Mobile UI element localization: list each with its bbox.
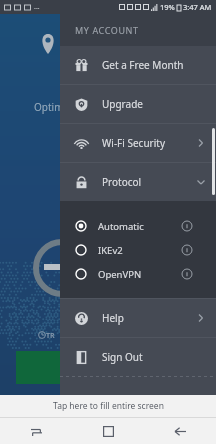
button[interactable]: Back [144, 418, 216, 444]
staticText: TR [46, 331, 55, 341]
staticText: ... [34, 2, 40, 12]
staticText: MY ACCOUNT [75, 24, 139, 36]
staticText: Protocol [102, 175, 196, 189]
staticText: 3:47 AM [183, 2, 212, 12]
staticText: Tap here to fill entire screen [53, 400, 164, 412]
button[interactable]: Protocol [60, 163, 216, 201]
button[interactable]: OpenVPN [60, 262, 216, 286]
staticText: IKEv2 [98, 244, 180, 257]
staticText: Help [102, 311, 196, 325]
button[interactable]: Upgrade [60, 85, 216, 123]
staticText: Get a Free Month [102, 58, 206, 72]
button[interactable]: Home [72, 418, 144, 444]
staticText: Upgrade [102, 97, 206, 111]
staticText: 19% [160, 2, 175, 12]
staticText: Wi-Fi Security [102, 136, 196, 150]
button[interactable]: Get a Free Month [60, 46, 216, 84]
button[interactable]: Info about OpenVPN [180, 267, 194, 281]
button[interactable]: Recents [0, 418, 72, 444]
staticText: Sign Out [102, 350, 206, 364]
button[interactable]: IKEv2 [60, 238, 216, 262]
staticText: OpenVPN [98, 268, 180, 281]
button[interactable]: Sign Out [60, 338, 216, 376]
button[interactable]: Info about IKEv2 [180, 243, 194, 257]
button[interactable]: Help [60, 299, 216, 337]
button[interactable]: Wi-Fi Security [60, 124, 216, 162]
button[interactable]: Automatic [60, 214, 216, 238]
staticText: Optim [34, 100, 64, 114]
staticText: Automatic [98, 220, 180, 233]
button[interactable]: Info about Automatic [180, 219, 194, 233]
